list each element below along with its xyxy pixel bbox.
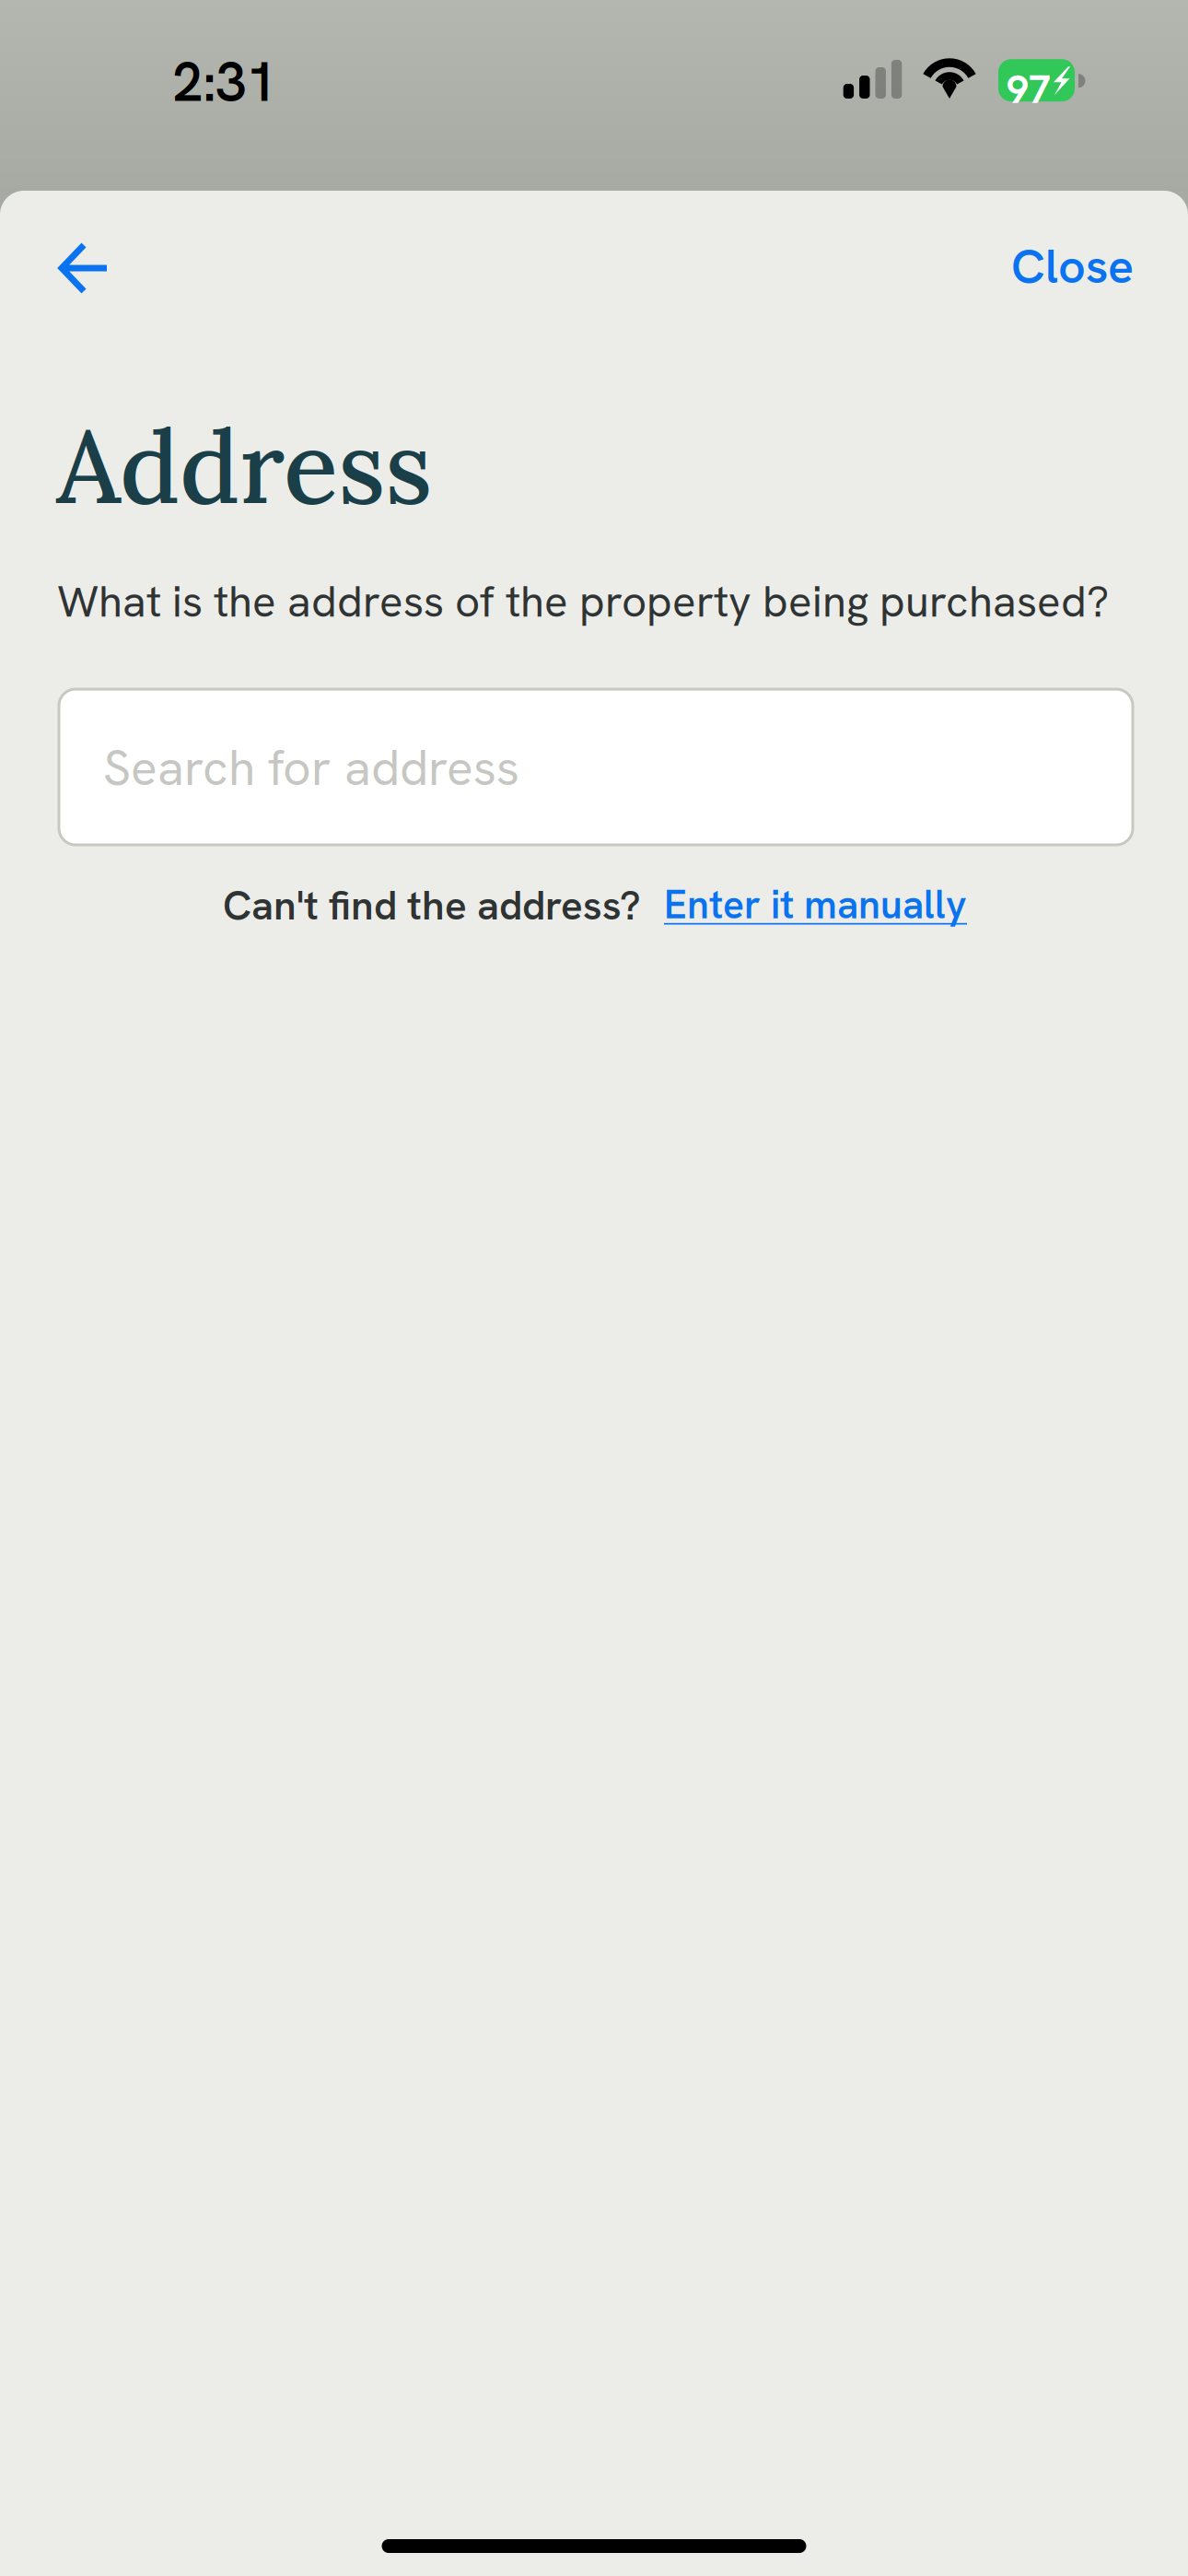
- button[interactable]: Close: [922, 211, 1188, 322]
- staticText: Can't find the address?: [223, 879, 641, 932]
- staticText: Enter it manually: [664, 879, 967, 930]
- staticText: Search for address: [103, 736, 519, 800]
- staticText: What is the address of the property bein…: [57, 573, 1109, 630]
- button[interactable]: Enter it manually: [658, 875, 973, 934]
- staticText: 97: [1007, 64, 1051, 115]
- staticText: Close: [1011, 235, 1134, 297]
- staticText: Address: [56, 402, 432, 531]
- staticText: 2:31: [173, 47, 277, 117]
- button[interactable]: Back: [0, 215, 157, 325]
